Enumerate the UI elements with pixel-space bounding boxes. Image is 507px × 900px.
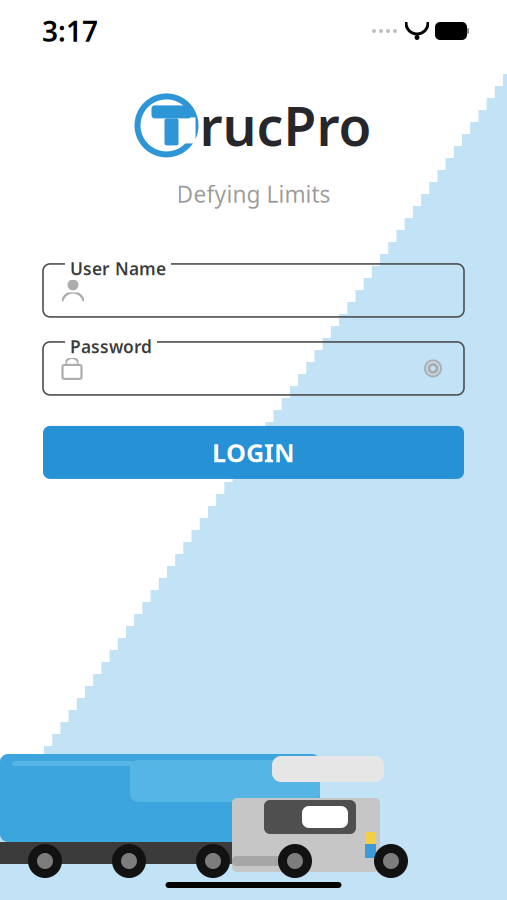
button[interactable]: LOGIN <box>43 426 464 479</box>
staticText: 3:17 <box>42 12 98 50</box>
button[interactable]: Show password <box>420 356 446 380</box>
staticText: Password <box>70 335 152 358</box>
staticText: Defying Limits <box>176 179 330 209</box>
staticText: LOGIN <box>212 436 295 469</box>
staticText: rucPro <box>199 90 371 161</box>
staticText: User Name <box>70 257 166 280</box>
